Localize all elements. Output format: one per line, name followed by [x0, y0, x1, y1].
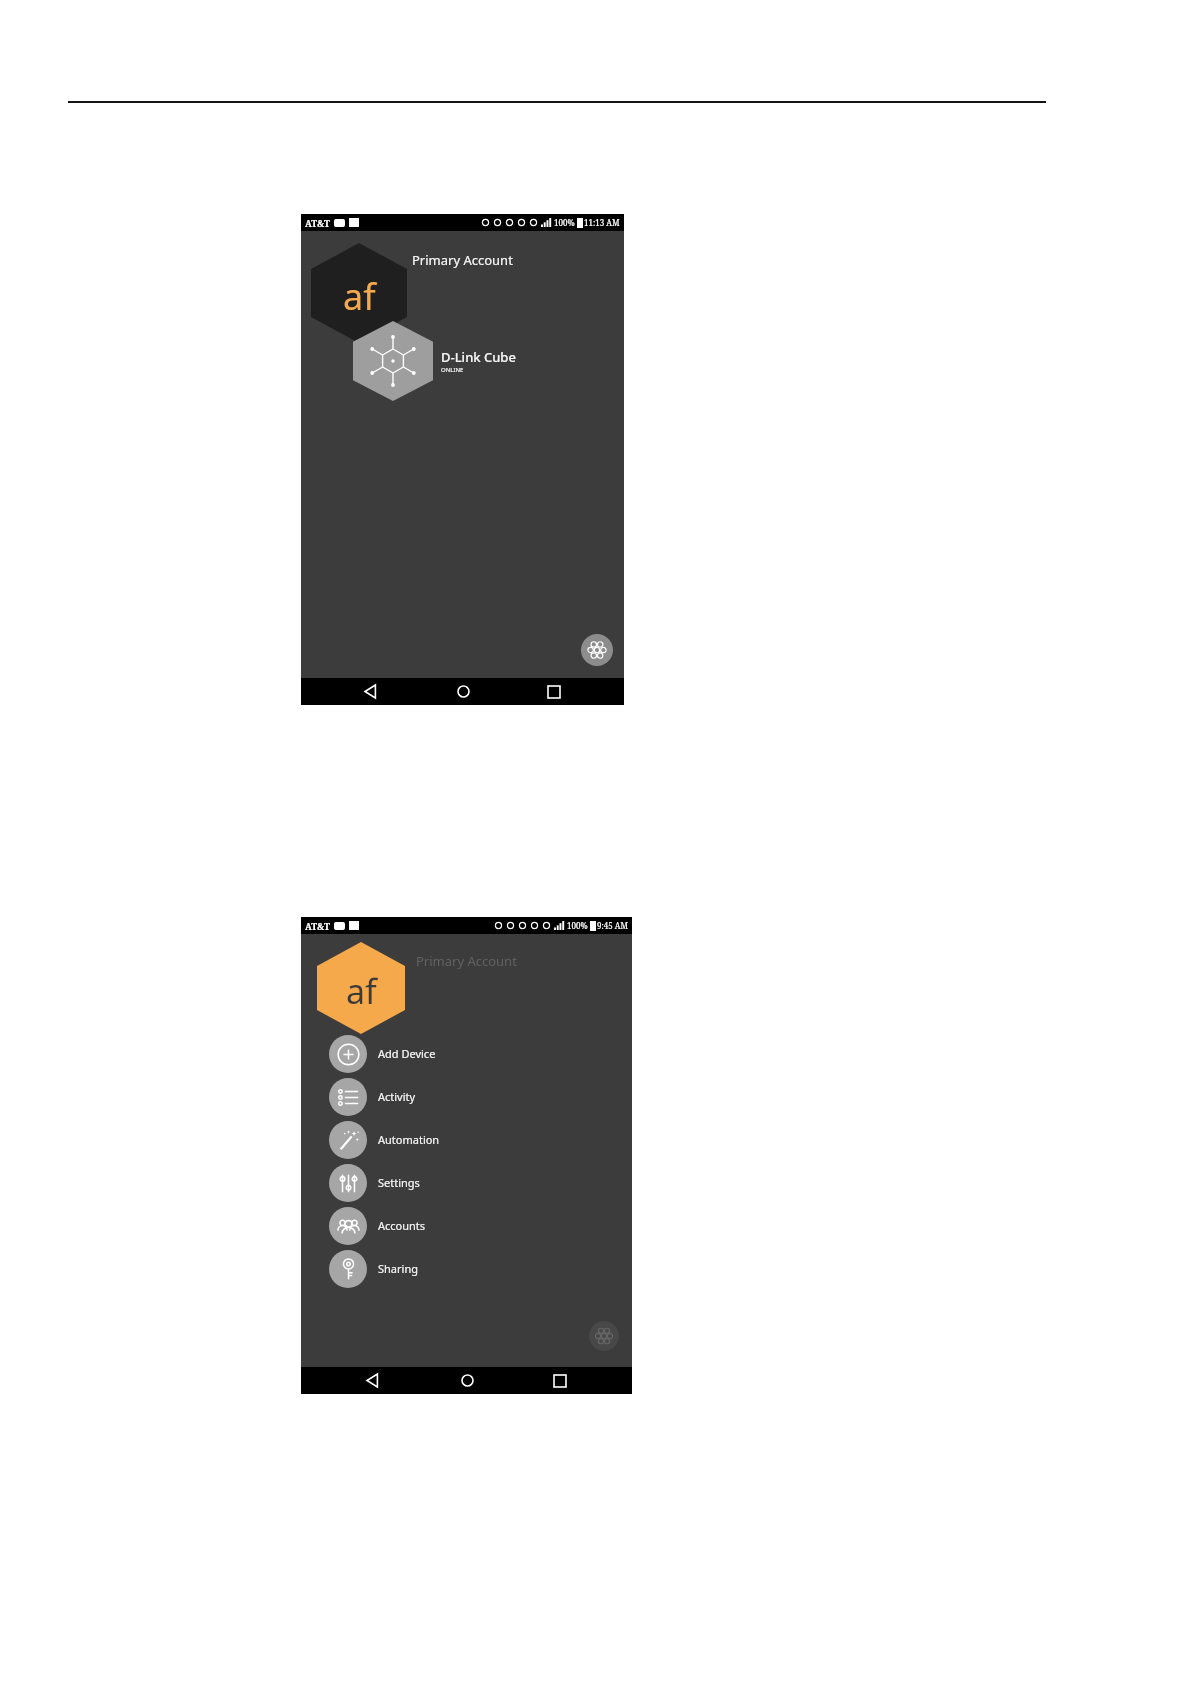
staticText: Accounts: [378, 1218, 426, 1233]
staticText: Primary Account: [412, 251, 513, 269]
staticText: 100%: [554, 217, 575, 228]
button[interactable]: Activity: [329, 1075, 529, 1118]
button[interactable]: Primary Account: [317, 942, 405, 1034]
button[interactable]: Menu: [581, 634, 613, 666]
staticText: D-Link Cube: [441, 348, 516, 366]
staticText: Primary Account: [416, 952, 517, 970]
button[interactable]: Primary Account: [311, 243, 407, 343]
button[interactable]: Recents: [533, 678, 575, 705]
button[interactable]: Recents: [539, 1367, 581, 1394]
button[interactable]: Add Device: [329, 1032, 529, 1075]
staticText: af: [343, 272, 376, 321]
button[interactable]: Menu: [589, 1321, 619, 1351]
button[interactable]: Home: [446, 1367, 488, 1394]
staticText: Automation: [378, 1132, 440, 1147]
staticText: AT&T: [305, 217, 330, 229]
staticText: 9:45 AM: [597, 920, 628, 931]
button[interactable]: Sharing: [329, 1247, 529, 1290]
button[interactable]: Accounts: [329, 1204, 529, 1247]
staticText: Activity: [378, 1089, 416, 1104]
staticText: 11:13 AM: [584, 217, 620, 228]
staticText: Add Device: [378, 1046, 436, 1061]
button[interactable]: D-Link Cube: [353, 321, 583, 401]
staticText: Settings: [378, 1175, 420, 1190]
staticText: 100%: [567, 920, 588, 931]
staticText: ONLINE: [441, 366, 464, 374]
button[interactable]: Automation: [329, 1118, 529, 1161]
staticText: Sharing: [378, 1261, 418, 1276]
button[interactable]: Back: [352, 1367, 394, 1394]
button[interactable]: Home: [442, 678, 484, 705]
button[interactable]: Settings: [329, 1161, 529, 1204]
button[interactable]: Back: [350, 678, 392, 705]
staticText: af: [346, 968, 377, 1014]
staticText: AT&T: [305, 920, 330, 932]
